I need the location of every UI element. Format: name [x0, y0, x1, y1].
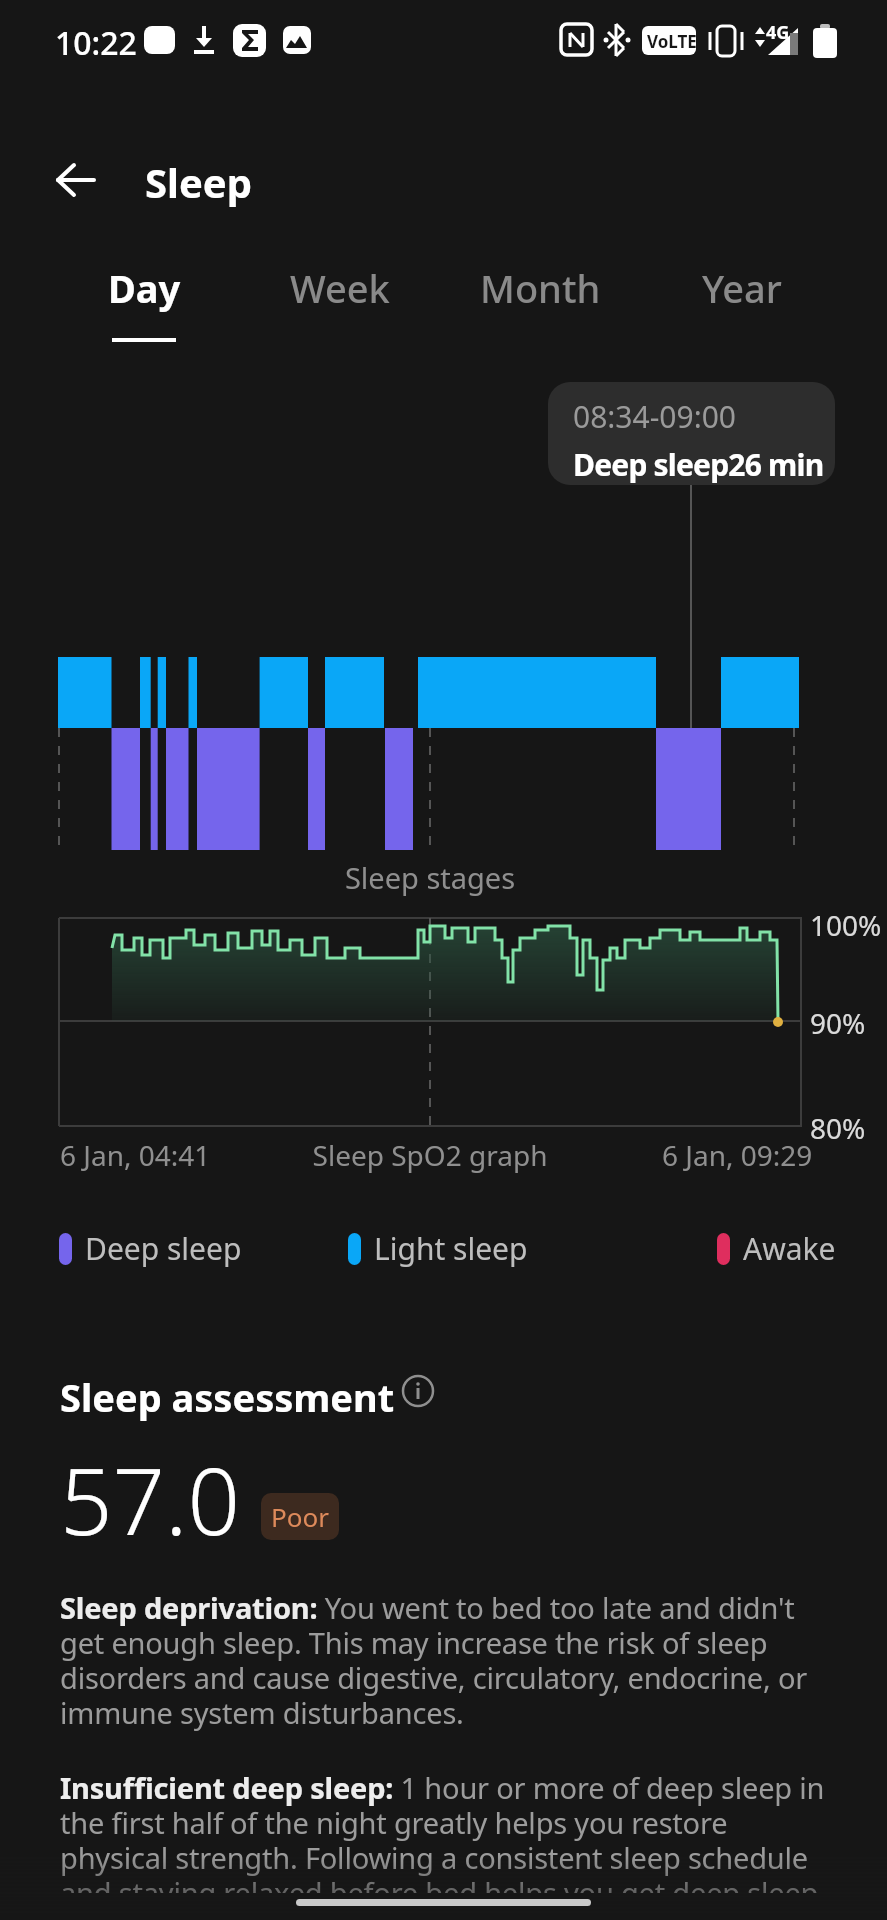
staticText: Sleep deprivation: You went to bed too l…: [60, 1588, 828, 1733]
button[interactable]: Deep sleep: [59, 1228, 242, 1269]
staticText: Week: [290, 262, 390, 314]
button[interactable]: Month: [460, 262, 620, 346]
staticText: Deep sleep26 min: [573, 444, 824, 485]
staticText: Month: [480, 262, 601, 314]
staticText: 57.0: [60, 1437, 241, 1562]
staticText: 08:34-09:00: [573, 396, 737, 437]
staticText: 10:22: [55, 21, 137, 65]
button[interactable]: Week: [260, 262, 420, 346]
staticText: Sleep assessment: [60, 1371, 395, 1423]
staticText: Year: [702, 262, 782, 314]
staticText: Awake: [743, 1228, 836, 1269]
staticText: Deep sleep: [85, 1228, 242, 1269]
staticText: Light sleep: [374, 1228, 528, 1269]
button[interactable]: Day: [64, 262, 224, 346]
staticText: Day: [108, 262, 181, 314]
button[interactable]: Light sleep: [348, 1228, 528, 1269]
button[interactable]: Year: [662, 262, 822, 346]
staticText: 6 Jan, 09:29: [662, 1136, 813, 1174]
staticText: Poor: [271, 1499, 329, 1534]
staticText: VoLTE: [647, 30, 697, 53]
button[interactable]: Awake: [717, 1228, 836, 1269]
button[interactable]: [56, 160, 98, 200]
staticText: Sleep: [145, 155, 252, 209]
staticText: 4G: [766, 20, 790, 45]
staticText: 90%: [810, 1004, 866, 1042]
staticText: 6 Jan, 04:41: [60, 1136, 211, 1174]
staticText: Sleep SpO2 graph: [280, 1136, 580, 1174]
staticText: 100%: [810, 906, 882, 944]
staticText: Sleep stages: [280, 858, 580, 897]
button[interactable]: [402, 1375, 434, 1407]
staticText: 80%: [810, 1109, 866, 1147]
staticText: Insufficient deep sleep: 1 hour or more …: [60, 1768, 828, 1893]
